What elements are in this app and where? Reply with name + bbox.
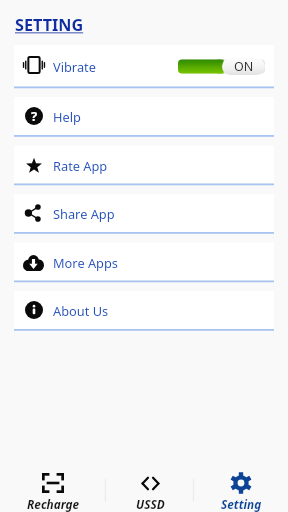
staticText: Share App [53, 205, 115, 222]
button[interactable]: More Apps [14, 243, 274, 281]
other: Recharge [42, 473, 64, 493]
staticText: SETTING [15, 14, 84, 36]
staticText: Vibrate [53, 58, 96, 75]
staticText: ON [234, 58, 254, 75]
other: Setting [230, 472, 252, 494]
button[interactable]: Setting [194, 466, 288, 512]
button[interactable]: ? [14, 97, 274, 135]
staticText: About Us [53, 302, 109, 319]
staticText: ? [31, 107, 38, 125]
staticText: Recharge [27, 496, 80, 512]
other: USSD [140, 477, 161, 490]
staticText: USSD [136, 496, 165, 512]
staticText: Rate App [53, 157, 108, 174]
button[interactable]: USSD [106, 466, 194, 512]
staticText: Help [53, 108, 81, 125]
staticText: More Apps [53, 254, 118, 271]
button[interactable]: Vibrate [14, 45, 274, 87]
staticText: Setting [221, 496, 262, 512]
button[interactable]: Rate App [14, 146, 274, 184]
button[interactable]: Recharge [0, 466, 106, 512]
button[interactable]: Share App [14, 194, 274, 232]
button[interactable]: About Us [14, 291, 274, 329]
